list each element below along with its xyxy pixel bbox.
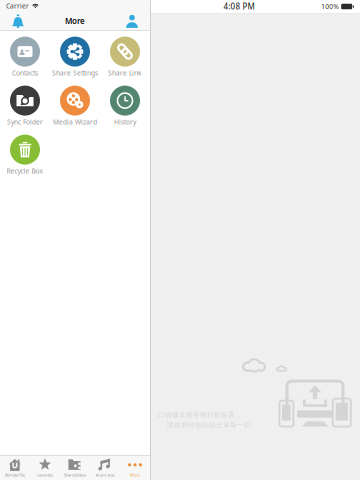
button[interactable]: Share Link [100,31,150,80]
staticText: More [65,16,85,26]
button[interactable]: Recycle Box [0,129,50,178]
staticText: Carrier [6,2,29,10]
staticText: More [130,472,140,478]
staticText: History [114,118,136,126]
staticText: Favorites [37,472,53,478]
staticText: Contacts [12,69,38,77]
button[interactable]: More [120,456,150,480]
button[interactable]: Shared Inbox [60,456,90,480]
button[interactable]: Share Settings [50,31,100,80]
staticText: Remote File [5,472,25,478]
staticText: Music Box [95,472,114,478]
staticText: Share Link [108,69,142,77]
button[interactable]: Contacts [0,31,50,80]
staticText: 口袋碟支援各種行動裝置， [158,411,242,419]
button[interactable]: Remote File [0,456,30,480]
staticText: Share Settings [52,69,98,77]
staticText: 讓你無時無刻的分享每一刻。 [167,421,258,429]
button[interactable]: Media Wizard [50,80,100,129]
staticText: Recycle Box [6,167,43,175]
button[interactable]: Sync Folder [0,80,50,129]
staticText: 4:08 PM [224,1,255,12]
staticText: 100% [321,2,339,11]
button[interactable]: Music Box [90,456,120,480]
staticText: Sync Folder [7,118,43,126]
staticText: Shared Inbox [64,472,86,478]
staticText: Media Wizard [53,118,97,126]
button[interactable]: Favorites [30,456,60,480]
button[interactable]: Notifications [0,12,36,30]
button[interactable]: History [100,80,150,129]
button[interactable]: Account [114,12,150,30]
